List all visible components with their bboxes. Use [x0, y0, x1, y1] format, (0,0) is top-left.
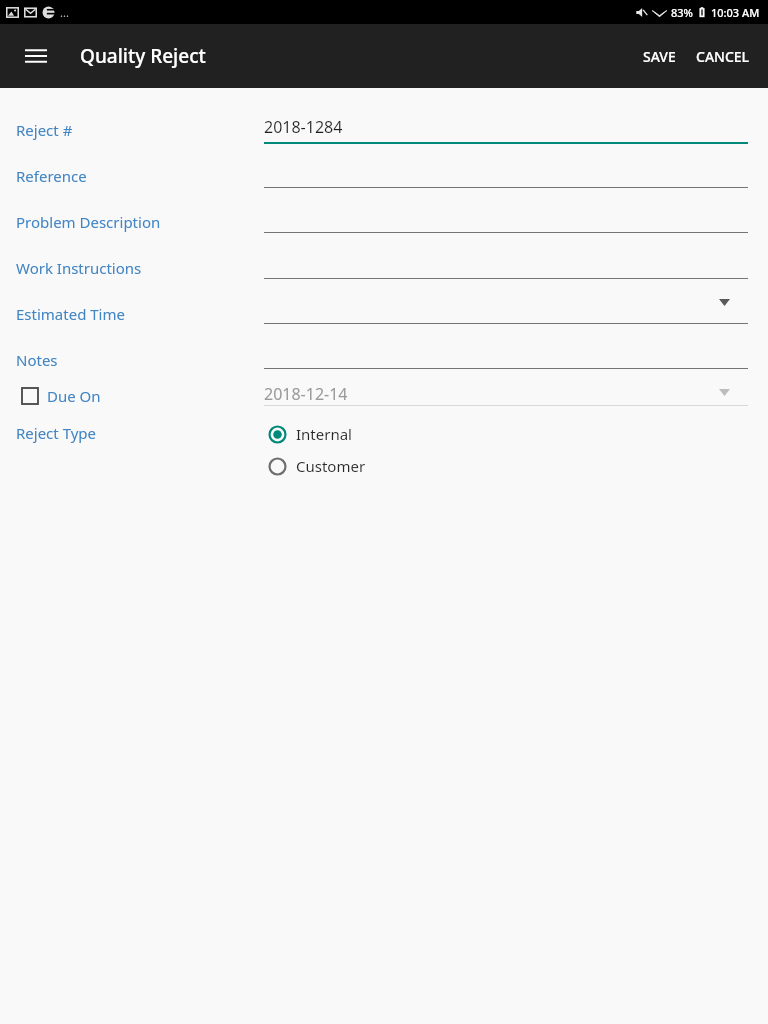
staticText: Work Instructions	[16, 258, 142, 278]
staticText: Notes	[16, 350, 58, 370]
staticText: Reject #	[16, 120, 73, 140]
staticText: 2018-12-14	[264, 383, 348, 405]
button[interactable]: Estimated Time dropdown	[708, 286, 740, 318]
staticText: 2018-1284	[264, 116, 343, 138]
staticText: 10:03 AM	[711, 5, 760, 20]
button[interactable]: Internal	[268, 424, 364, 444]
staticText: Quality Reject	[80, 43, 206, 69]
staticText: SAVE	[643, 47, 676, 66]
staticText: Internal	[296, 424, 352, 444]
staticText: Estimated Time	[16, 304, 125, 324]
button[interactable]: CANCEL	[686, 35, 760, 78]
staticText: 83%	[671, 5, 693, 20]
staticText: Due On	[47, 386, 101, 406]
staticText: Reject Type	[16, 423, 97, 443]
button[interactable]: Work Instructions	[264, 248, 748, 280]
button[interactable]: Reject #	[264, 112, 748, 144]
button[interactable]: Due On	[22, 386, 101, 406]
button[interactable]: Problem Description	[264, 202, 748, 234]
button[interactable]: Notes	[264, 338, 748, 370]
staticText: Reference	[16, 166, 87, 186]
staticText: Customer	[296, 456, 366, 476]
staticText: CANCEL	[696, 47, 750, 66]
button[interactable]: Customer	[268, 456, 378, 476]
staticText: ...	[60, 5, 69, 20]
button[interactable]: SAVE	[633, 35, 686, 78]
button[interactable]: Due date picker	[708, 376, 740, 408]
button[interactable]: Open navigation menu	[12, 32, 60, 80]
button[interactable]: Estimated Time	[264, 293, 748, 325]
staticText: Problem Description	[16, 212, 161, 232]
button[interactable]: Reference	[264, 157, 748, 189]
